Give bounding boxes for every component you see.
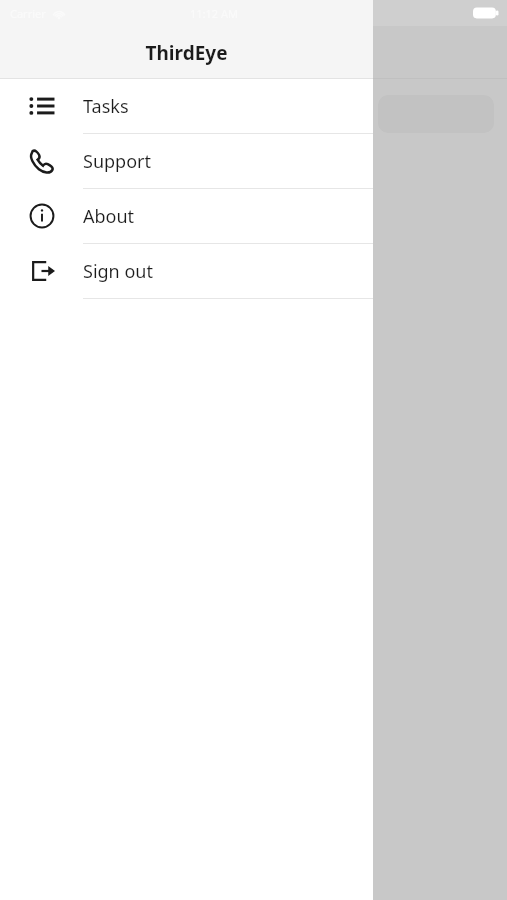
staticText: About: [83, 204, 135, 229]
button[interactable]: About: [0, 189, 373, 243]
button[interactable]: Sign out: [0, 244, 373, 298]
button[interactable]: Tasks: [0, 79, 373, 133]
staticText: Support: [83, 149, 151, 174]
button[interactable]: Support: [0, 134, 373, 188]
staticText: Tasks: [83, 94, 129, 119]
staticText: Sign out: [83, 259, 153, 284]
staticText: ThirdEye: [0, 40, 373, 66]
